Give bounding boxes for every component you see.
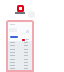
button[interactable] bbox=[10, 49, 30, 51]
button[interactable] bbox=[10, 42, 30, 44]
button[interactable]: Logo bbox=[17, 5, 24, 12]
button[interactable] bbox=[10, 45, 30, 47]
button[interactable] bbox=[10, 59, 30, 61]
button[interactable] bbox=[10, 55, 30, 57]
button[interactable]: Primary action bbox=[10, 36, 18, 38]
button[interactable] bbox=[10, 52, 30, 54]
button[interactable]: Profile bbox=[28, 11, 35, 18]
button[interactable] bbox=[10, 62, 30, 64]
button[interactable] bbox=[10, 65, 30, 67]
button[interactable] bbox=[10, 68, 30, 70]
